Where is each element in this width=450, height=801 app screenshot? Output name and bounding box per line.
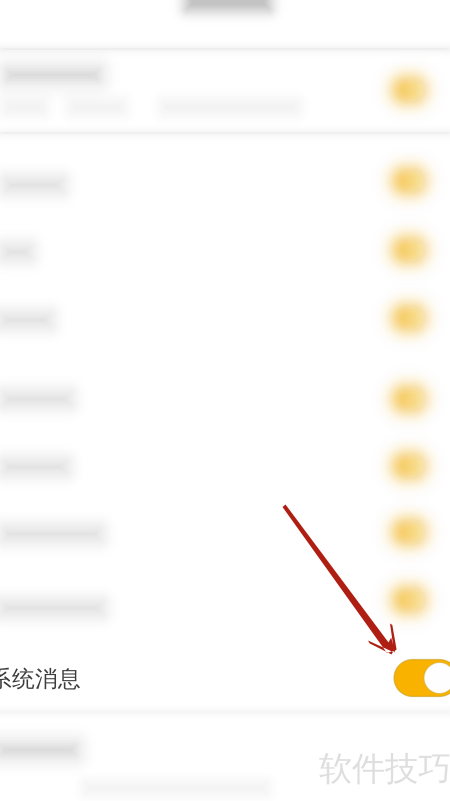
button[interactable]: Notification switch, on [0, 0, 450, 801]
button[interactable]: 系统消息 [0, 662, 99, 696]
button[interactable]: Notification switch, on [0, 0, 450, 801]
button[interactable]: Notification switch, on [0, 0, 450, 801]
button[interactable]: Notification switch, on [0, 0, 450, 801]
button[interactable]: Notification switch, on [0, 0, 450, 801]
button[interactable]: Notification switch, on [0, 0, 450, 801]
button[interactable]: Notification switch, on [0, 0, 450, 801]
staticText: 系统消息 [0, 665, 81, 693]
button[interactable]: Notification switch, on [0, 0, 450, 801]
staticText: 软件技巧 [319, 748, 450, 789]
button[interactable]: 系统消息 switch, on [394, 659, 450, 696]
